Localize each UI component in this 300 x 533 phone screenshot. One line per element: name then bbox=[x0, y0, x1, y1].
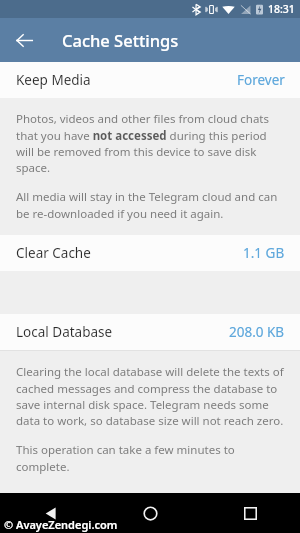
button[interactable]: Local Database bbox=[0, 314, 300, 350]
button[interactable]: Keep Media bbox=[0, 62, 300, 98]
staticText: Clearing the local database will delete … bbox=[16, 364, 286, 428]
staticText: 18:31 bbox=[268, 2, 295, 16]
button[interactable]: Back bbox=[8, 24, 40, 56]
staticText: Local Database bbox=[16, 323, 113, 341]
button[interactable]: Home bbox=[100, 493, 200, 533]
staticText: Forever bbox=[237, 71, 285, 89]
button[interactable]: Clear Cache bbox=[0, 235, 300, 271]
button[interactable]: Back bbox=[0, 493, 100, 533]
staticText: 1.1 GB bbox=[243, 244, 285, 262]
staticText: Photos, videos and other files from clou… bbox=[16, 111, 286, 175]
staticText: © AvayeZendegi.com bbox=[4, 517, 118, 532]
staticText: Keep Media bbox=[16, 71, 91, 89]
staticText: Clear Cache bbox=[16, 244, 91, 262]
staticText: 208.0 KB bbox=[229, 323, 285, 341]
staticText: Cache Settings bbox=[62, 29, 179, 51]
button[interactable]: Recent apps bbox=[200, 493, 300, 533]
staticText: This operation can take a few minutes to… bbox=[16, 442, 286, 474]
staticText: All media will stay in the Telegram clou… bbox=[16, 189, 286, 221]
